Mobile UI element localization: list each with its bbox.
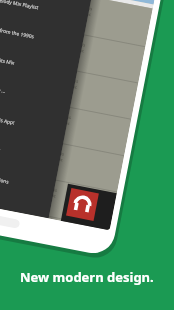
button[interactable]: New modern design promo screenshot bbox=[0, 0, 174, 310]
